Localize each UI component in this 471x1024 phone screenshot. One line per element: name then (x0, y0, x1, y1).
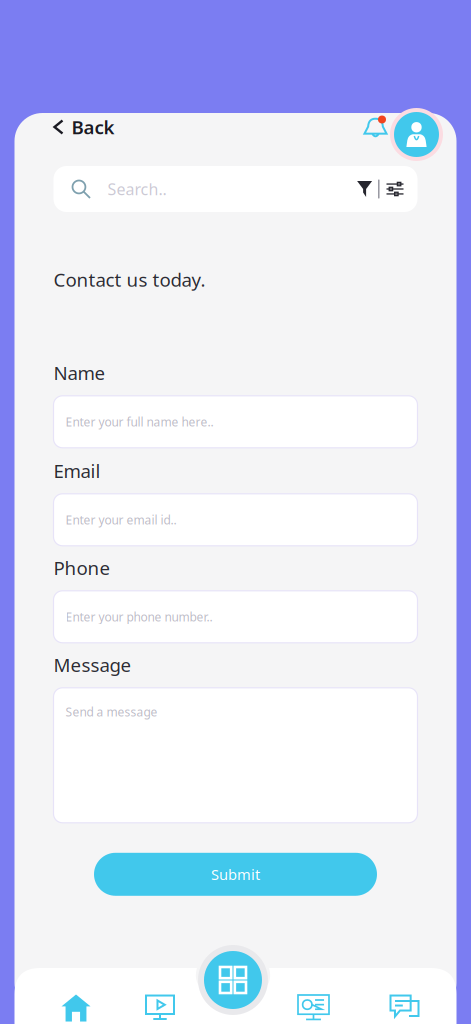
button[interactable]: Videos (137, 988, 182, 1024)
button[interactable]: Submit (94, 853, 377, 896)
staticText: Name (53, 360, 105, 385)
staticText: Enter your phone number.. (65, 609, 212, 625)
staticText: Send a message (65, 704, 157, 720)
button[interactable]: Notifications (363, 115, 387, 138)
staticText: Submit (211, 865, 260, 884)
staticText: Contact us today. (53, 267, 205, 292)
button[interactable]: Back (54, 110, 114, 144)
button[interactable]: Apps (198, 945, 268, 1015)
button[interactable]: Home (14, 988, 137, 1024)
staticText: Back (71, 115, 114, 139)
button[interactable]: Reports (274, 988, 352, 1024)
staticText: Phone (53, 555, 110, 580)
staticText: Message (53, 652, 131, 677)
staticText: Enter your full name here.. (65, 414, 213, 430)
staticText: Enter your email id.. (65, 512, 176, 528)
button[interactable]: Profile (390, 108, 443, 161)
staticText: Email (53, 458, 100, 483)
button[interactable]: Messages (352, 988, 456, 1024)
staticText: Search.. (107, 178, 166, 200)
button[interactable]: Search.. (53, 166, 417, 212)
